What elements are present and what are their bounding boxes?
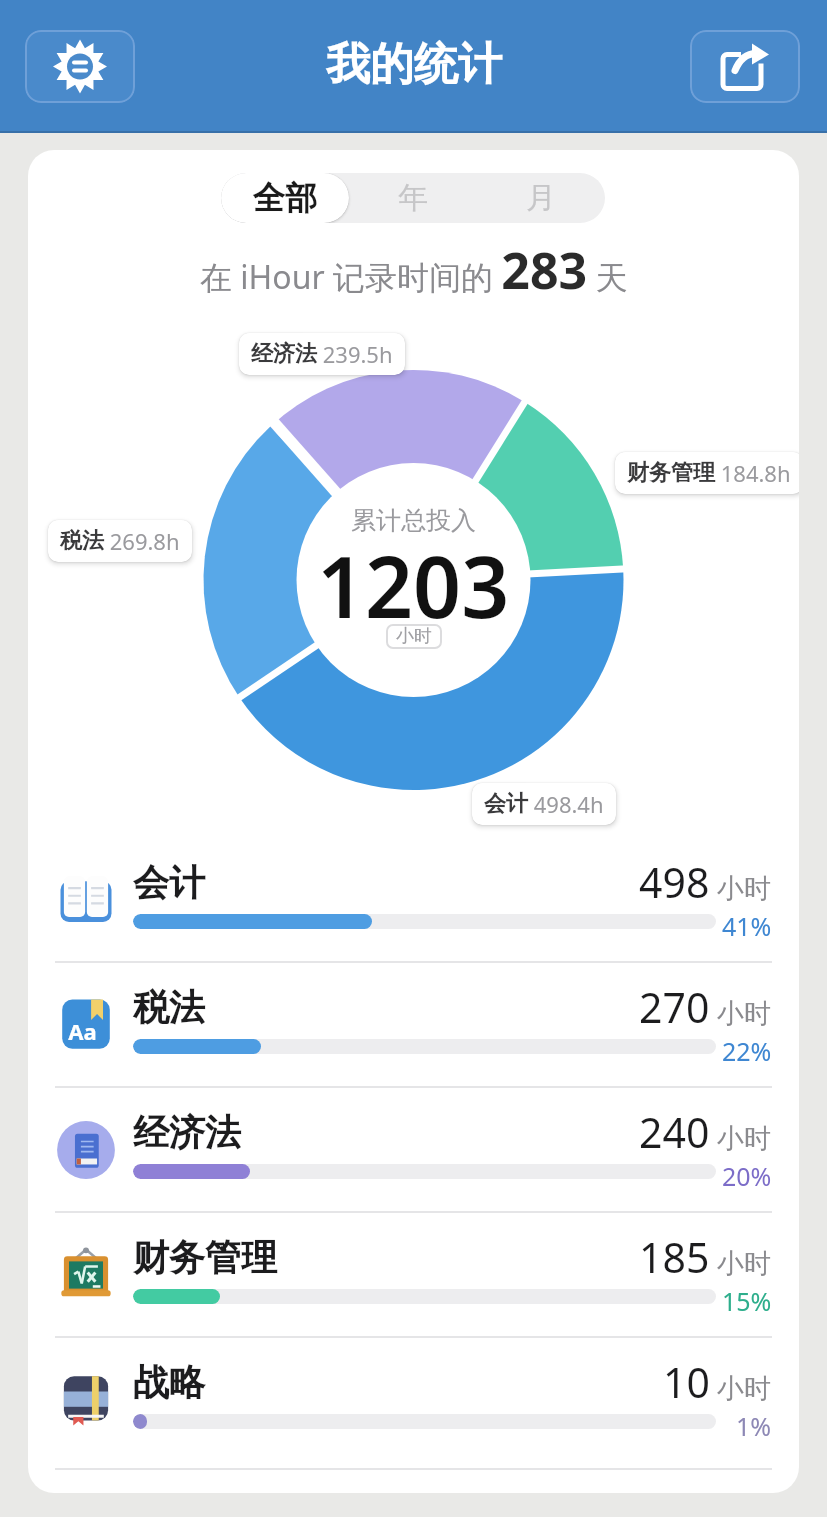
staticText: 184.8h: [715, 458, 791, 488]
button[interactable]: 会计: [28, 838, 799, 963]
staticText: 月: [526, 179, 556, 217]
staticText: 20%: [722, 1159, 772, 1193]
staticText: 498.4h: [528, 789, 604, 819]
staticText: 1%: [736, 1409, 772, 1443]
staticText: 270: [639, 979, 710, 1035]
button[interactable]: 全部: [221, 173, 349, 223]
staticText: 小时: [710, 869, 772, 906]
staticText: 税法: [60, 527, 104, 555]
staticText: 185: [639, 1229, 710, 1285]
staticText: 经济法: [133, 1110, 241, 1155]
staticText: 我的统计: [326, 37, 502, 92]
staticText: 财务管理: [627, 459, 715, 487]
button[interactable]: 月: [477, 173, 605, 223]
staticText: 269.8h: [104, 526, 180, 556]
button[interactable]: 年: [349, 173, 477, 223]
staticText: 会计: [133, 860, 205, 905]
staticText: 财务管理: [133, 1235, 277, 1280]
staticText: 小时: [710, 994, 772, 1031]
staticText: 15%: [722, 1284, 772, 1318]
staticText: 税法: [133, 985, 205, 1030]
button[interactable]: Aa: [28, 963, 799, 1088]
staticText: 239.5h: [317, 339, 393, 369]
staticText: 小时: [710, 1369, 772, 1406]
staticText: 会计: [484, 790, 528, 818]
button[interactable]: [25, 30, 135, 103]
staticText: 10: [663, 1354, 710, 1410]
staticText: 经济法: [251, 340, 317, 368]
button[interactable]: 财务管理: [28, 1213, 799, 1338]
staticText: 在 iHour 记录时间的 283 天: [200, 236, 628, 304]
button[interactable]: [690, 30, 800, 103]
button[interactable]: 战略: [28, 1338, 799, 1470]
staticText: 小时: [710, 1244, 772, 1281]
staticText: 全部: [253, 178, 317, 218]
staticText: 小时: [396, 625, 432, 648]
staticText: 498: [639, 854, 710, 910]
staticText: Aa: [68, 1016, 97, 1046]
staticText: 年: [398, 179, 428, 217]
staticText: 1203: [317, 528, 510, 642]
staticText: 战略: [133, 1360, 205, 1405]
staticText: 22%: [722, 1034, 772, 1068]
staticText: 小时: [710, 1119, 772, 1156]
staticText: 累计总投入: [351, 505, 476, 536]
button[interactable]: 经济法: [28, 1088, 799, 1213]
staticText: 240: [639, 1104, 710, 1160]
staticText: 41%: [722, 909, 772, 943]
